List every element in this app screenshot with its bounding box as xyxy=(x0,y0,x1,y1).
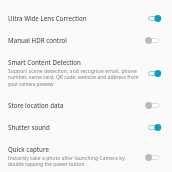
staticText: Quick capture xyxy=(8,145,168,153)
staticText: Ultra Wide Lens Correction xyxy=(8,14,168,22)
button[interactable] xyxy=(0,93,172,115)
button[interactable]: Store location data xyxy=(145,101,162,110)
button[interactable]: Manual HDR control xyxy=(145,36,162,45)
staticText: double tapping the power button xyxy=(8,161,168,168)
button[interactable] xyxy=(0,6,172,28)
staticText: Manual HDR control xyxy=(8,36,168,44)
button[interactable]: Smart Content Detection xyxy=(145,69,162,78)
staticText: Support scene detection, and recognize e… xyxy=(8,68,168,75)
staticText: Store location data xyxy=(8,101,168,109)
button[interactable]: Ultra Wide Lens Correction xyxy=(145,14,162,23)
button[interactable] xyxy=(0,50,172,93)
button[interactable] xyxy=(0,28,172,50)
staticText: number, name card, QR code, website and … xyxy=(8,74,168,81)
staticText: Smart Content Detection xyxy=(8,58,168,66)
button[interactable] xyxy=(0,137,172,172)
staticText: Shutter sound xyxy=(8,123,168,131)
staticText: Instantly take a photo after launching C… xyxy=(8,155,168,162)
button[interactable]: Quick capture xyxy=(145,153,162,162)
button[interactable] xyxy=(0,115,172,137)
staticText: your camera preview xyxy=(8,81,168,88)
button[interactable]: Shutter sound xyxy=(145,123,162,132)
